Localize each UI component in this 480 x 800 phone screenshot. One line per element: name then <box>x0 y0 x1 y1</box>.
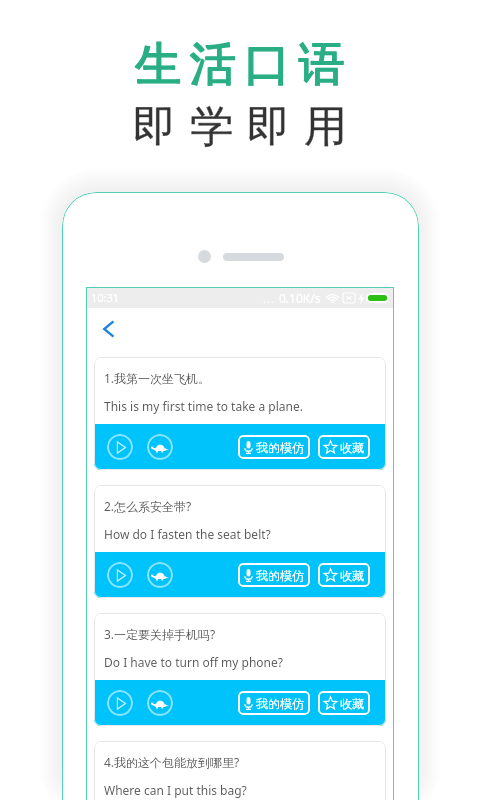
staticText: 我的模仿 <box>256 440 304 455</box>
button[interactable]: 2.怎么系安全带? <box>94 485 386 598</box>
button[interactable]: Play <box>107 690 133 716</box>
button[interactable]: 我的模仿 <box>238 563 310 587</box>
staticText: 我的模仿 <box>256 696 304 711</box>
button[interactable]: Play slowly <box>147 434 173 460</box>
staticText: 我的模仿 <box>256 568 304 583</box>
staticText: This is my first time to take a plane. <box>104 398 303 414</box>
staticText: 2.怎么系安全带? <box>104 498 192 514</box>
staticText: 生活口语 <box>131 36 349 94</box>
staticText: 生活口语 <box>131 36 349 94</box>
staticText: 4.我的这个包能放到哪里? <box>104 754 240 770</box>
staticText: 即学即用 <box>126 100 354 154</box>
button[interactable]: 1.我第一次坐飞机。 <box>94 357 386 470</box>
staticText: 3.一定要关掉手机吗? <box>104 626 216 642</box>
button[interactable]: 我的模仿 <box>238 691 310 715</box>
staticText: 即学即用 <box>126 100 354 154</box>
staticText: Do I have to turn off my phone? <box>104 654 283 670</box>
button[interactable]: 收藏 <box>318 435 370 459</box>
staticText: 0.10K/s <box>279 290 321 306</box>
staticText: Where can I put this bag? <box>104 782 247 798</box>
button[interactable]: 3.一定要关掉手机吗? <box>94 613 386 726</box>
button[interactable]: Back <box>94 314 124 344</box>
staticText: 收藏 <box>340 696 364 711</box>
button[interactable]: Play <box>107 562 133 588</box>
button[interactable]: Play slowly <box>147 562 173 588</box>
staticText: 1.我第一次坐飞机。 <box>104 370 211 386</box>
staticText: How do I fasten the seat belt? <box>104 526 271 542</box>
staticText: 收藏 <box>340 440 364 455</box>
button[interactable]: Play slowly <box>147 690 173 716</box>
staticText: 10:31 <box>91 290 120 305</box>
button[interactable]: 收藏 <box>318 691 370 715</box>
button[interactable]: 4.我的这个包能放到哪里? <box>94 741 386 800</box>
staticText: 收藏 <box>340 568 364 583</box>
button[interactable]: 我的模仿 <box>238 435 310 459</box>
button[interactable]: Play <box>107 434 133 460</box>
button[interactable]: 收藏 <box>318 563 370 587</box>
